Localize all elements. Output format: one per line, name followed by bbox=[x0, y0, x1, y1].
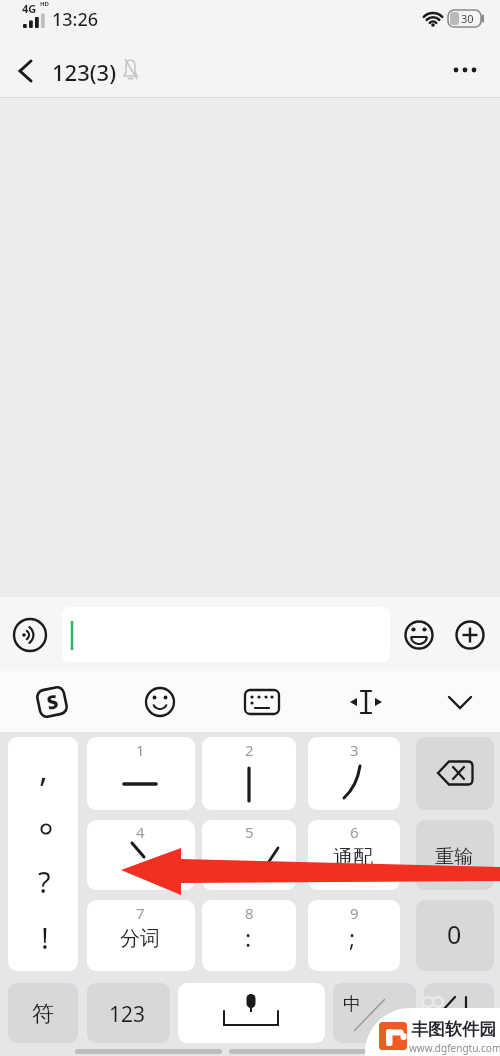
button[interactable] bbox=[12, 52, 46, 88]
button[interactable] bbox=[142, 684, 178, 720]
button[interactable] bbox=[87, 983, 170, 1043]
staticText: , bbox=[39, 747, 48, 792]
button[interactable] bbox=[202, 820, 296, 890]
staticText: HD bbox=[40, 0, 49, 8]
staticText: 4G bbox=[22, 1, 37, 16]
button[interactable] bbox=[87, 737, 195, 810]
staticText: 7 bbox=[136, 903, 145, 923]
button[interactable] bbox=[442, 684, 478, 720]
staticText: 123(3) bbox=[52, 57, 117, 87]
button[interactable] bbox=[308, 900, 400, 971]
staticText: 30 bbox=[461, 11, 474, 26]
button[interactable] bbox=[87, 820, 195, 890]
button[interactable] bbox=[202, 737, 296, 810]
staticText: www.dgfengtu.com bbox=[409, 1041, 500, 1055]
button[interactable] bbox=[416, 737, 494, 810]
button[interactable] bbox=[8, 983, 78, 1043]
staticText: 丰图软件园 bbox=[411, 1019, 496, 1040]
button[interactable] bbox=[348, 684, 384, 720]
staticText: S bbox=[44, 688, 61, 716]
staticText: 5 bbox=[245, 822, 254, 842]
staticText: : bbox=[245, 922, 252, 953]
staticText: 分词 bbox=[120, 926, 160, 951]
button[interactable] bbox=[178, 983, 325, 1043]
staticText: 123 bbox=[109, 1000, 146, 1029]
staticText: 2 bbox=[245, 740, 254, 760]
staticText: ! bbox=[41, 918, 49, 957]
button[interactable] bbox=[62, 607, 390, 662]
button[interactable] bbox=[202, 900, 296, 971]
button[interactable] bbox=[402, 618, 436, 652]
staticText: 符 bbox=[32, 1000, 54, 1028]
staticText: 0 bbox=[447, 917, 462, 951]
button[interactable] bbox=[34, 684, 70, 720]
button[interactable] bbox=[444, 52, 486, 88]
staticText: ; bbox=[349, 922, 356, 953]
staticText: 6 bbox=[350, 822, 359, 842]
button[interactable] bbox=[416, 900, 494, 971]
staticText: 13:26 bbox=[52, 7, 99, 32]
staticText: ? bbox=[38, 862, 51, 901]
button[interactable]: 丰图软件园 bbox=[365, 1008, 500, 1056]
staticText: 重输 bbox=[435, 845, 473, 869]
button[interactable] bbox=[8, 737, 78, 971]
button[interactable] bbox=[87, 900, 195, 971]
button[interactable] bbox=[308, 737, 400, 810]
button[interactable] bbox=[453, 618, 487, 652]
staticText: 3 bbox=[350, 740, 359, 760]
staticText: 1 bbox=[136, 740, 145, 760]
button[interactable] bbox=[416, 820, 494, 890]
button[interactable] bbox=[424, 983, 494, 1043]
staticText: 通配 bbox=[333, 845, 373, 870]
button[interactable] bbox=[308, 820, 400, 890]
button[interactable] bbox=[12, 617, 48, 653]
staticText: 4 bbox=[136, 822, 145, 842]
button[interactable] bbox=[333, 983, 416, 1043]
staticText: 9 bbox=[350, 903, 359, 923]
staticText: 8 bbox=[245, 903, 254, 923]
staticText: 中 bbox=[343, 993, 361, 1016]
button[interactable] bbox=[244, 684, 280, 720]
